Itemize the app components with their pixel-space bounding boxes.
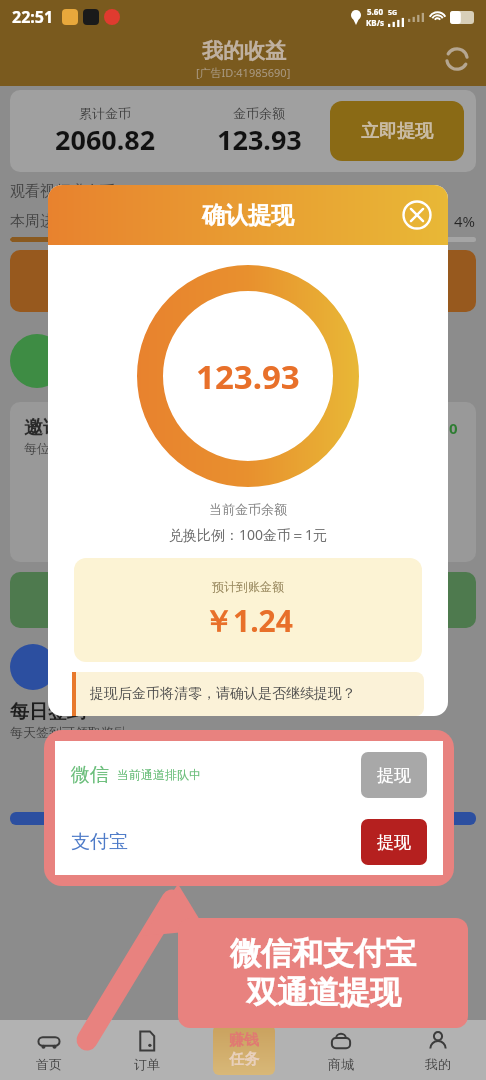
button[interactable]: 提现 [361, 819, 427, 865]
staticText: 2060.82 [55, 121, 156, 158]
staticText: 赚钱 [229, 1031, 259, 1050]
staticText: 支付宝 [71, 830, 128, 854]
staticText: 提现 [377, 832, 411, 853]
staticText: 每天签到可领取奖励 [10, 724, 127, 740]
staticText: 5G [388, 8, 398, 18]
staticText: 22:51 [12, 6, 54, 28]
button[interactable]: 微信 [71, 741, 427, 808]
button[interactable] [10, 250, 476, 312]
staticText: 提现后金币将清零，请确认是否继续提现？ [90, 685, 356, 703]
button[interactable]: 首页 [0, 1020, 98, 1080]
staticText: 观看视频赚金币 [10, 182, 115, 201]
staticText: 5.60 [367, 6, 383, 17]
staticText: 4% [454, 211, 476, 231]
staticText: 首页 [36, 1056, 62, 1072]
staticText: 123.93 [217, 121, 302, 158]
staticText: 邀请好友 [24, 416, 100, 440]
staticText: 当前通道排队中 [117, 767, 201, 782]
button[interactable]: 商城 [292, 1020, 389, 1080]
staticText: 订单 [134, 1056, 160, 1072]
button[interactable]: 赚钱任务 [195, 1020, 292, 1080]
staticText: [广告ID:41985690] [196, 65, 291, 80]
button[interactable]: 提现 [361, 752, 427, 798]
staticText: 我的收益 [202, 38, 286, 64]
button[interactable]: 订单 [98, 1020, 195, 1080]
staticText: 0 [449, 418, 458, 438]
staticText: 立即提现 [361, 120, 433, 143]
staticText: 微信 [71, 763, 109, 787]
staticText: 确认提现 [202, 201, 294, 230]
staticText: 商城 [328, 1056, 354, 1072]
staticText: 任务 [229, 1050, 259, 1069]
staticText: 每日签到 [10, 700, 86, 724]
button[interactable]: 关闭 [402, 200, 432, 230]
button[interactable]: 我的 [389, 1020, 486, 1080]
staticText: 周五 [417, 748, 443, 764]
staticText: 当前金币余额 [48, 501, 448, 517]
staticText: 累计金币 [79, 105, 131, 121]
staticText: KB/s [366, 17, 384, 28]
staticText: 兑换比例：100金币＝1元 [48, 525, 448, 544]
staticText: 微信和支付宝 [230, 934, 416, 973]
staticText: 双通道提现 [246, 973, 401, 1012]
staticText: 金币余额 [233, 105, 285, 121]
staticText: 每位好友可得奖励 [24, 440, 128, 456]
staticText: 123.93 [196, 354, 300, 399]
staticText: 我的 [425, 1056, 451, 1072]
staticText: 本周进度 [10, 212, 70, 231]
staticText: 预计到账金额 [212, 579, 284, 594]
button[interactable]: 刷新 [442, 44, 472, 74]
button[interactable]: 立即提现 [330, 101, 464, 161]
staticText: 提现 [377, 765, 411, 786]
staticText: 周一 [44, 748, 70, 764]
staticText: ￥1.24 [203, 600, 293, 641]
button[interactable]: 支付宝 [71, 808, 427, 875]
